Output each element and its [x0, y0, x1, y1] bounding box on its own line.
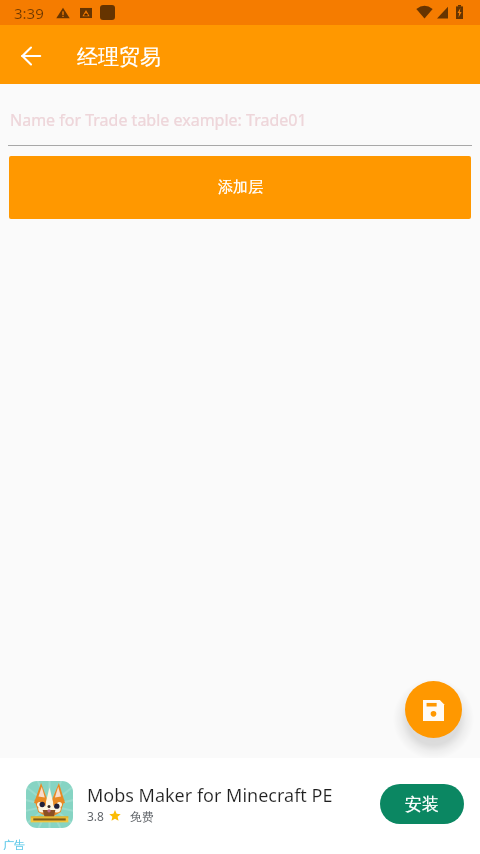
button[interactable]: 安装: [380, 784, 464, 824]
button[interactable]: Name for Trade table example: Trade01: [0, 97, 480, 145]
staticText: 广告: [3, 838, 25, 852]
staticText: 添加层: [218, 178, 263, 197]
staticText: Mobs Maker for Minecraft PE: [87, 783, 333, 808]
staticText: 3.8: [87, 808, 104, 824]
staticText: 3:39: [14, 3, 44, 23]
button[interactable]: Mobs Maker for Minecraft PE: [0, 758, 480, 854]
button[interactable]: Save: [405, 681, 462, 738]
button[interactable]: 添加层: [9, 156, 471, 219]
staticText: Name for Trade table example: Trade01: [10, 109, 307, 131]
staticText: 免费: [130, 809, 154, 824]
button[interactable]: Back: [12, 36, 50, 74]
staticText: 安装: [405, 794, 439, 815]
staticText: 经理贸易: [77, 44, 161, 70]
